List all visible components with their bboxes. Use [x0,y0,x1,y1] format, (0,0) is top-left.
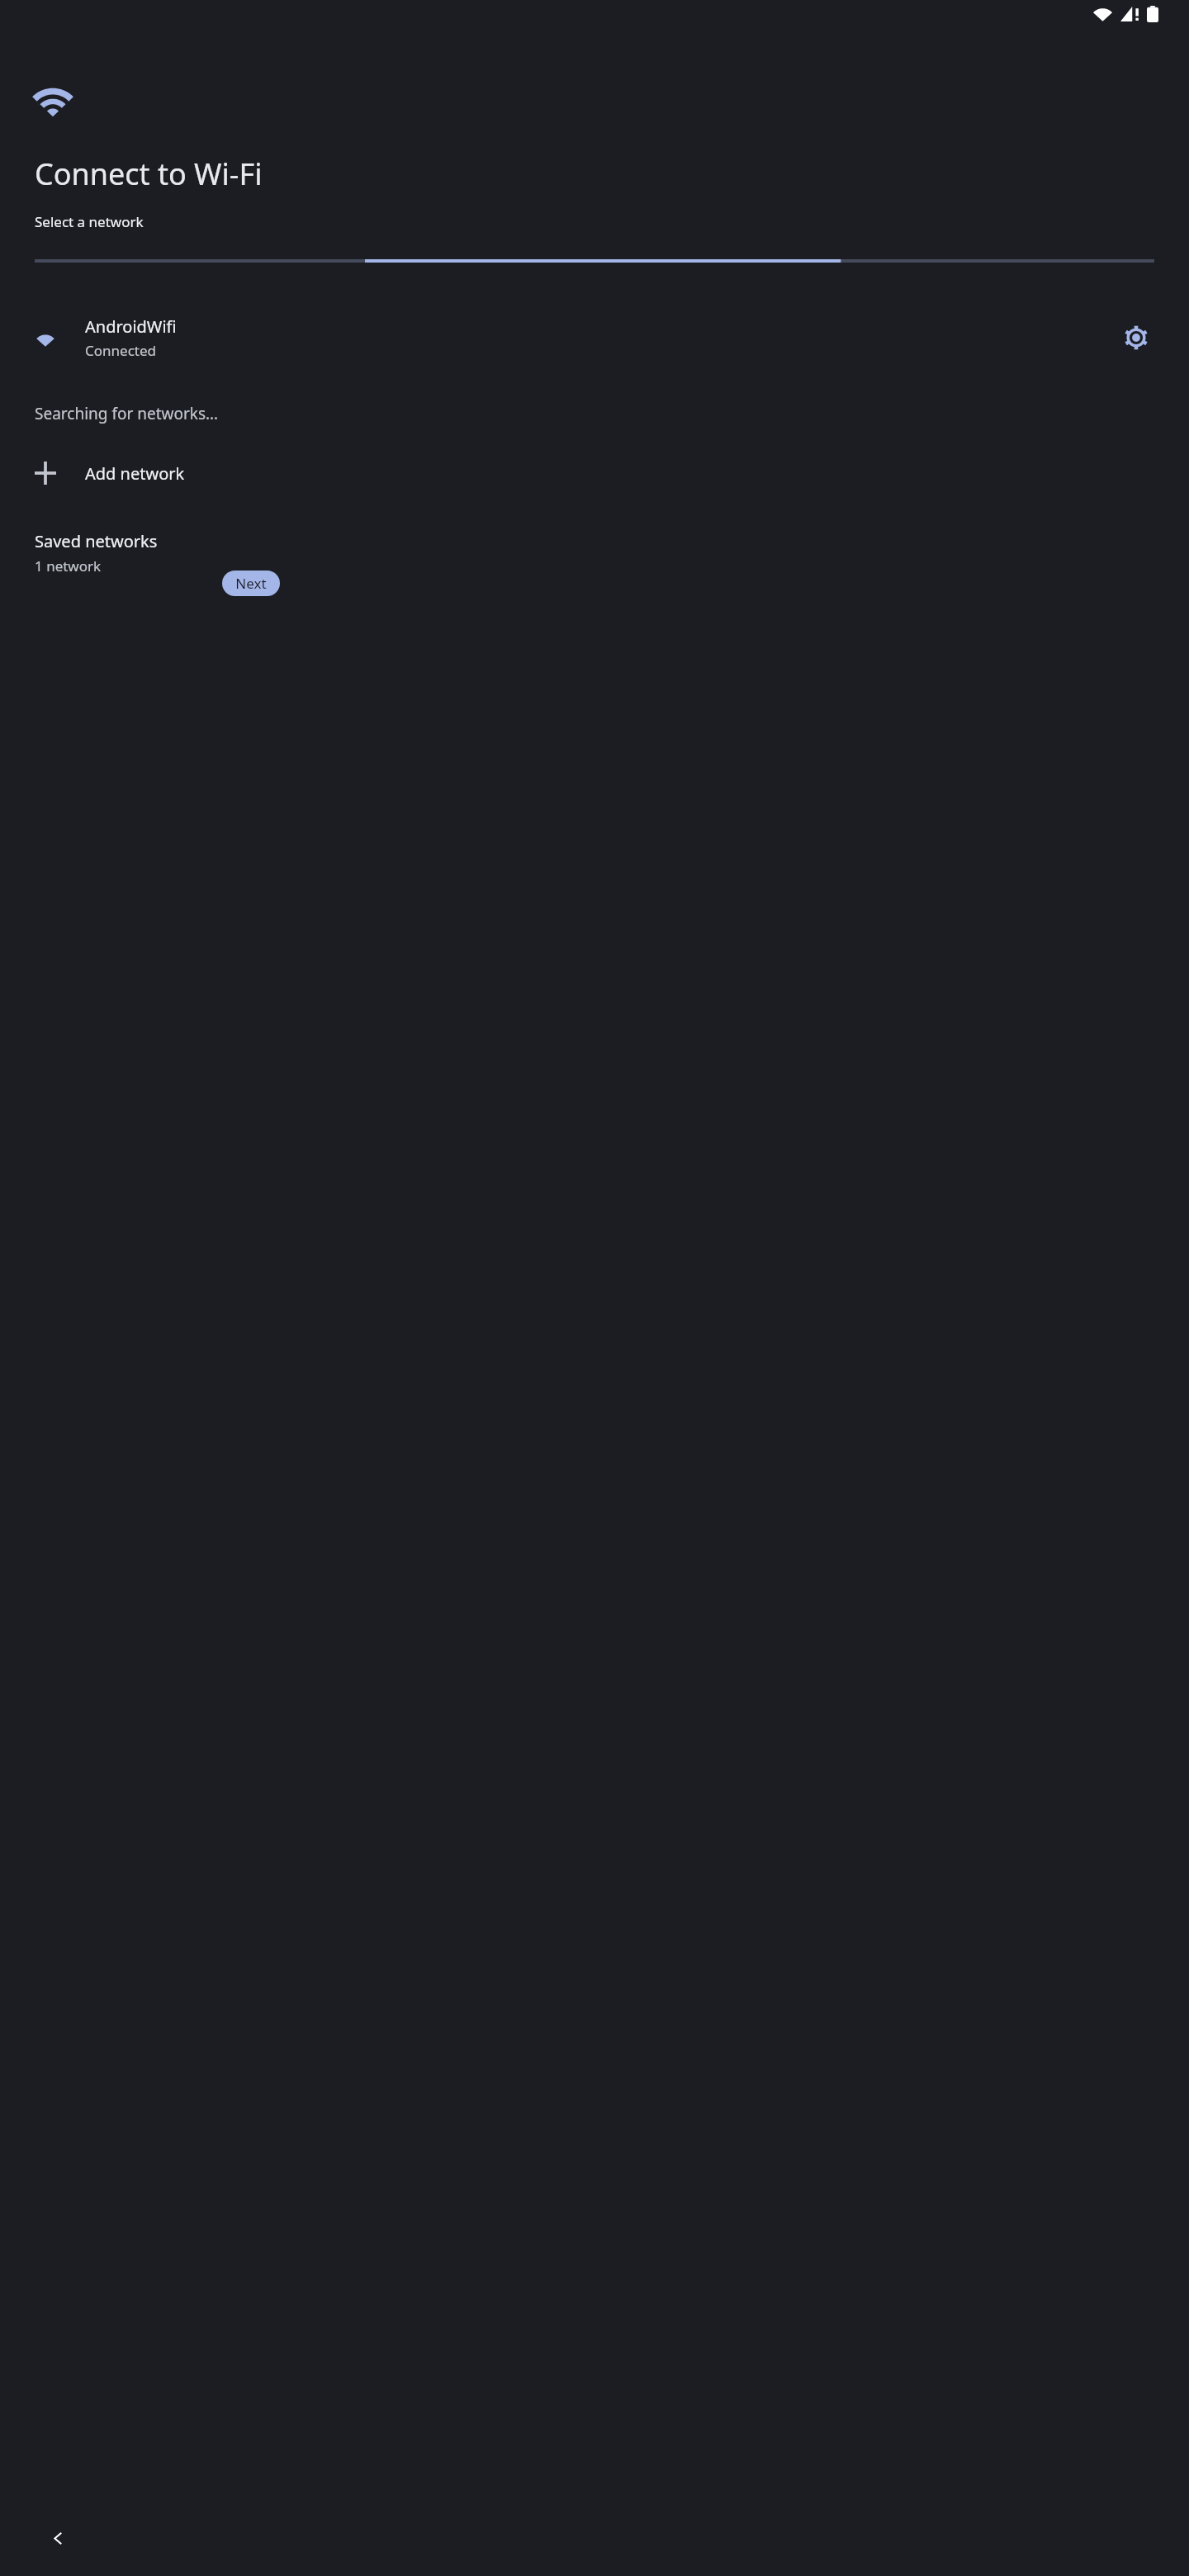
staticText: Saved networks [35,530,158,552]
staticText: 1 network [35,556,102,575]
staticText: AndroidWifi [85,315,177,338]
button[interactable]: AndroidWifi [0,305,1189,370]
staticText: Connect to Wi-Fi [35,154,263,194]
staticText: Connected [85,341,156,360]
staticText: Select a network [35,212,144,231]
button[interactable]: Add network [0,449,1189,497]
button[interactable]: Back [41,2522,74,2555]
staticText: Next [235,574,267,593]
staticText: Add network [85,462,185,485]
button[interactable]: Saved networks [0,525,1189,580]
button[interactable]: Network settings [1118,320,1154,356]
button[interactable]: Next [222,571,280,596]
staticText: Searching for networks… [35,403,219,424]
